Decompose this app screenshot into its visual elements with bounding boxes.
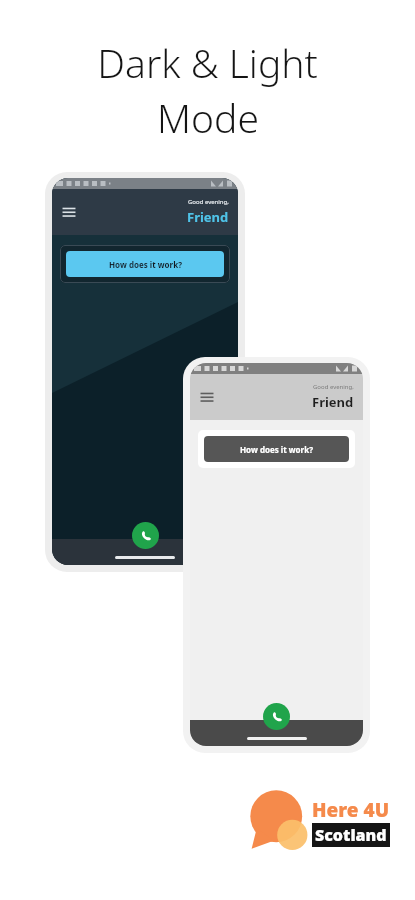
button[interactable]: Call [263, 703, 290, 730]
staticText: Here 4U [312, 797, 390, 823]
button[interactable]: Menu [198, 388, 216, 406]
staticText: Dark & Light [97, 36, 318, 89]
staticText: Friend [187, 208, 229, 226]
button[interactable]: Call [132, 522, 159, 549]
button[interactable]: Menu [60, 203, 78, 221]
staticText: How does it work? [240, 444, 313, 455]
staticText: Good evening, [313, 383, 354, 391]
button[interactable]: How does it work? [204, 436, 349, 462]
staticText: Scotland [315, 824, 387, 846]
staticText: Good evening, [188, 198, 229, 206]
button[interactable]: How does it work? [66, 251, 224, 277]
staticText: Friend [312, 393, 354, 411]
staticText: How does it work? [109, 259, 182, 270]
staticText: Mode [157, 91, 259, 144]
